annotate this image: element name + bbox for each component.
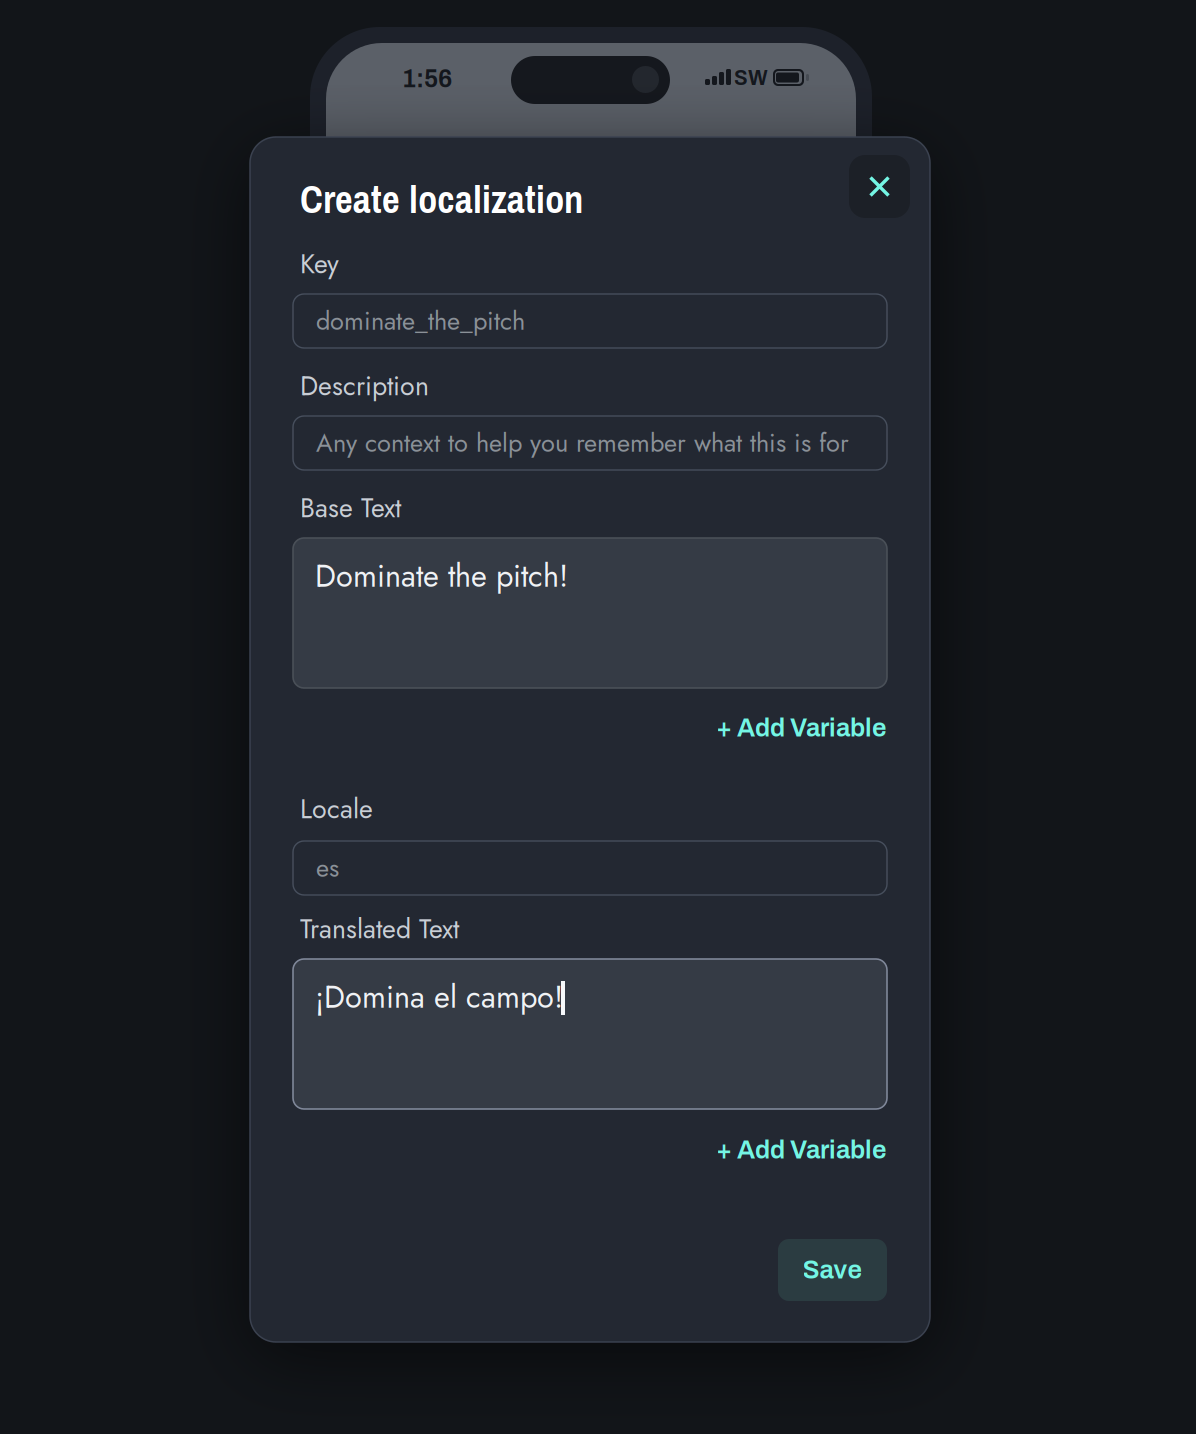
staticText: + Add Variable <box>716 1136 887 1164</box>
staticText: Description <box>300 367 429 405</box>
staticText: Key <box>300 245 339 283</box>
button[interactable]: Close <box>849 155 910 218</box>
staticText: es <box>316 850 339 886</box>
staticText: Locale <box>300 790 373 828</box>
button[interactable]: + Add Variable <box>293 711 887 745</box>
staticText: ¡Domina el campo! <box>315 975 563 1019</box>
staticText: Dominate the pitch! <box>315 554 568 598</box>
button[interactable]: + Add Variable <box>293 1133 887 1167</box>
staticText: 1:56 <box>402 65 452 93</box>
staticText: + Add Variable <box>716 714 887 742</box>
staticText: dominate_the_pitch <box>316 303 525 339</box>
staticText: Base Text <box>300 489 401 527</box>
staticText: Create localization <box>300 173 583 225</box>
button[interactable]: Save <box>778 1239 887 1301</box>
staticText: Any context to help you remember what th… <box>316 425 849 461</box>
staticText: Save <box>802 1256 862 1284</box>
staticText: SW <box>734 65 768 90</box>
staticText: Translated Text <box>300 910 459 948</box>
